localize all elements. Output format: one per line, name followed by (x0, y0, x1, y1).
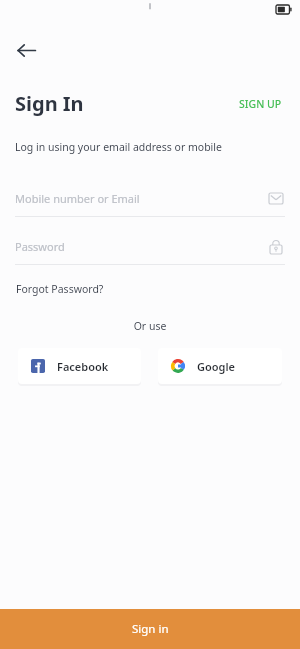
button[interactable]: Google (158, 348, 282, 384)
staticText: Password (15, 239, 65, 254)
staticText: Mobile number or Email (15, 191, 140, 206)
other: Email (267, 189, 285, 207)
button[interactable]: Forgot Password? (15, 280, 105, 298)
staticText: Forgot Password? (16, 282, 104, 296)
staticText: Sign in (132, 621, 169, 637)
button[interactable]: Password (15, 233, 285, 265)
staticText: Google (197, 359, 235, 374)
button[interactable]: Facebook (18, 348, 141, 384)
button[interactable]: Sign in (0, 609, 300, 649)
staticText: Log in using your email address or mobil… (15, 140, 222, 154)
button[interactable]: Mobile number or Email (15, 185, 285, 217)
staticText: SIGN UP (239, 97, 282, 111)
staticText: Facebook (57, 359, 109, 374)
staticText: Or use (0, 319, 300, 333)
staticText: Sign In (15, 90, 84, 117)
other: Show password (267, 237, 285, 255)
button[interactable]: SIGN UP (236, 93, 285, 115)
button[interactable]: Back (6, 30, 46, 70)
